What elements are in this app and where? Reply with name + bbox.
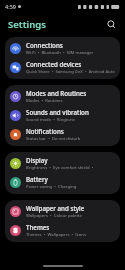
- staticText: Wallpaper and style: [26, 204, 85, 212]
- button[interactable]: Connected devices: [5, 58, 120, 77]
- button[interactable]: Display: [5, 154, 120, 173]
- staticText: Status bar • Do not disturb: [26, 136, 81, 142]
- button[interactable]: Search: [104, 17, 118, 31]
- staticText: Settings: [8, 18, 46, 31]
- staticText: Quick Share • Samsung DeX • Android Auto: [26, 69, 115, 75]
- button[interactable]: Notifications: [5, 125, 120, 144]
- staticText: Sound mode • Ringtone: [26, 117, 75, 123]
- button[interactable]: Sounds and vibration: [5, 106, 120, 125]
- staticText: Themes • Wallpapers • Icons: [26, 232, 86, 238]
- staticText: Brightness • Eye comfort shield • Naviga…: [26, 165, 115, 171]
- staticText: Modes • Routines: [26, 98, 63, 104]
- staticText: Modes and Routines: [26, 89, 87, 97]
- staticText: Power saving • Charging: [26, 184, 77, 190]
- staticText: Battery: [26, 175, 48, 183]
- button[interactable]: Connections: [5, 39, 120, 58]
- staticText: Display: [26, 156, 48, 164]
- button[interactable]: Modes and Routines: [5, 87, 120, 106]
- staticText: Notifications: [26, 127, 64, 135]
- staticText: Sounds and vibration: [26, 108, 89, 116]
- button[interactable]: Battery: [5, 173, 120, 192]
- staticText: Connected devices: [26, 60, 82, 68]
- staticText: Connections: [26, 41, 63, 49]
- staticText: Themes: [26, 223, 50, 231]
- button[interactable]: Wallpaper and style: [5, 202, 120, 221]
- staticText: Wallpapers • Colour palette: [26, 213, 82, 219]
- staticText: Wi-Fi • Bluetooth • SIM manager: [26, 50, 94, 56]
- staticText: 4:59: [5, 3, 16, 10]
- button[interactable]: Themes: [5, 221, 120, 240]
